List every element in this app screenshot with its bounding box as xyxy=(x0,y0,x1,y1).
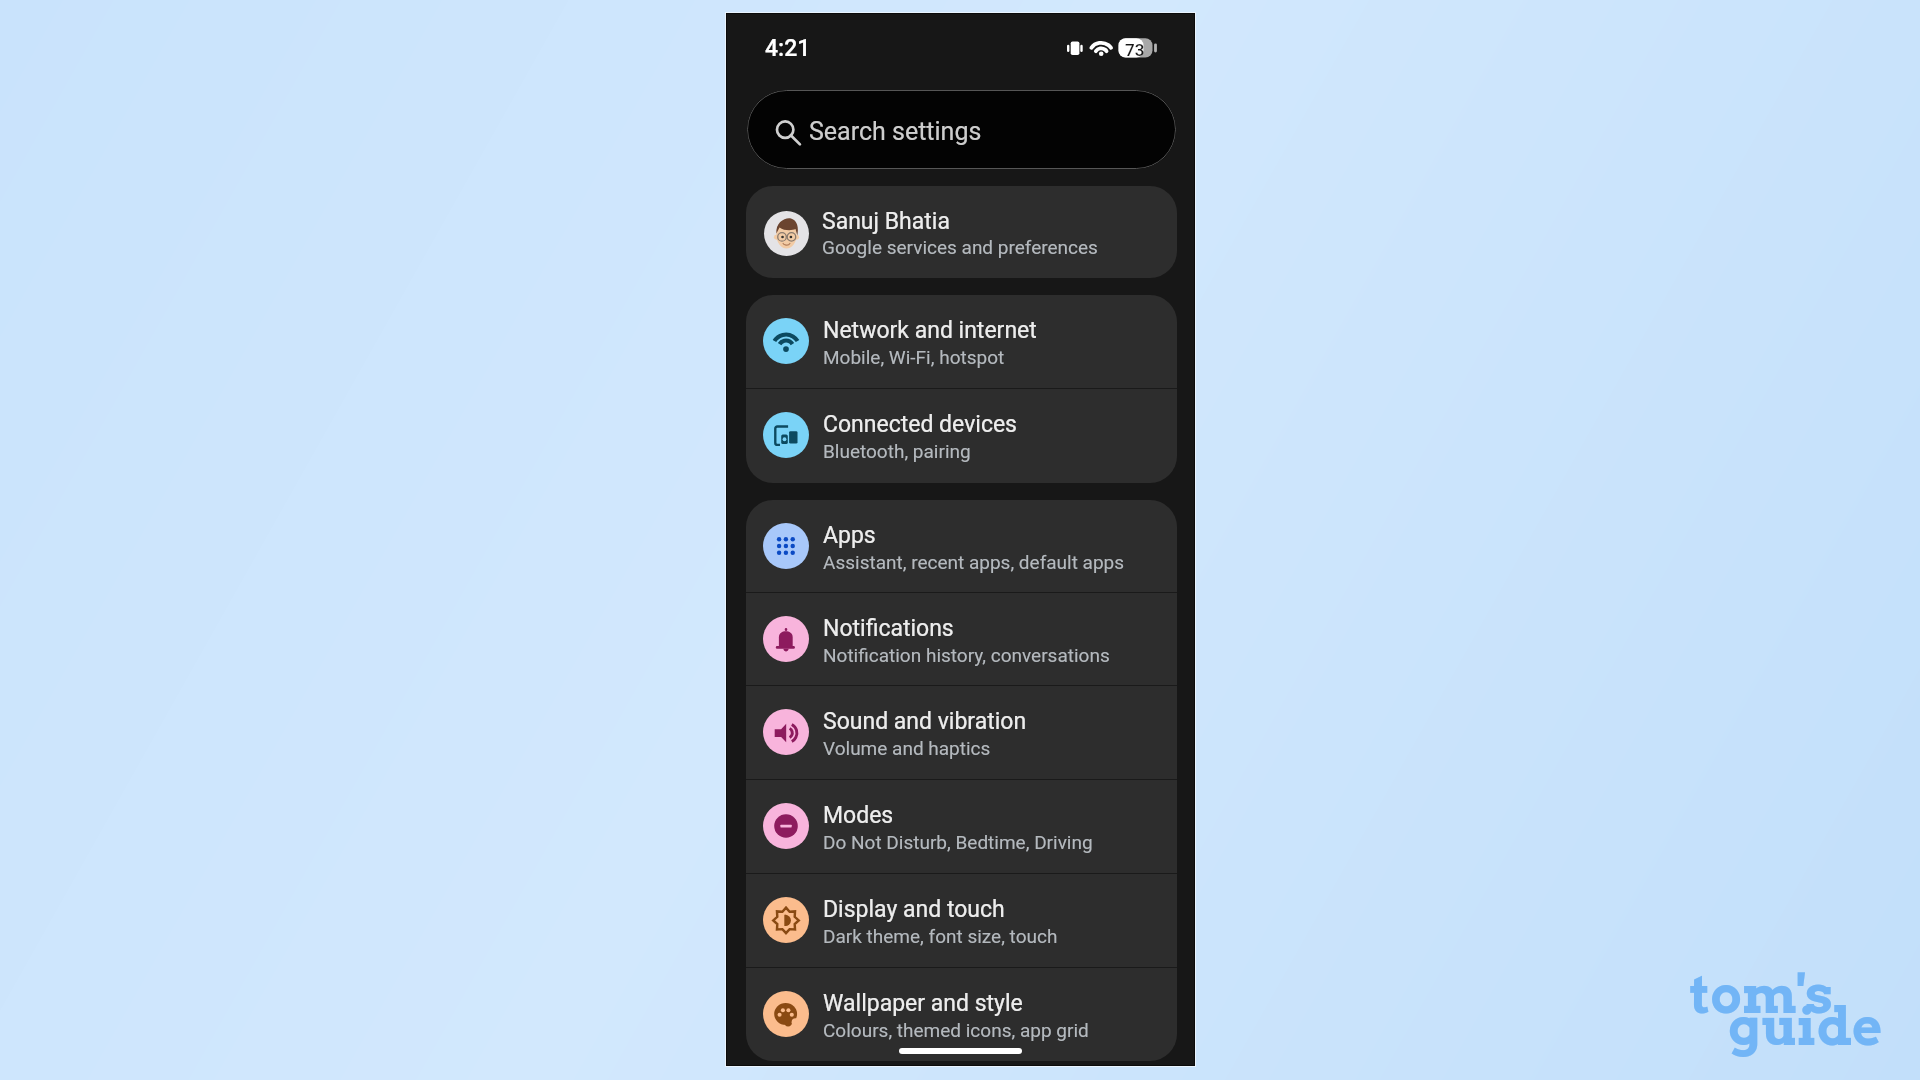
staticText: Notification history, conversations xyxy=(823,644,1110,666)
staticText: Search settings xyxy=(809,117,982,146)
button[interactable]: Modes xyxy=(746,780,1177,873)
staticText: Google services and preferences xyxy=(822,236,1098,258)
button[interactable]: Connected devices xyxy=(746,389,1177,483)
staticText: Sound and vibration xyxy=(823,708,1027,735)
button[interactable]: Sound and vibration xyxy=(746,686,1177,779)
staticText: Mobile, Wi-Fi, hotspot xyxy=(823,346,1005,368)
staticText: Network and internet xyxy=(823,317,1037,344)
button[interactable]: Search settings xyxy=(747,90,1176,169)
staticText: Do Not Disturb, Bedtime, Driving xyxy=(823,831,1093,853)
staticText: Modes xyxy=(823,802,894,829)
staticText: Notifications xyxy=(823,615,954,642)
staticText: tom's xyxy=(1690,963,1834,1026)
button[interactable]: Wallpaper and style xyxy=(746,968,1177,1061)
staticText: Volume and haptics xyxy=(823,737,991,759)
staticText: guide xyxy=(1728,995,1883,1058)
staticText: 73 xyxy=(1125,40,1145,60)
button[interactable]: Notifications xyxy=(746,593,1177,685)
staticText: Wallpaper and style xyxy=(823,990,1023,1017)
staticText: Sanuj Bhatia xyxy=(822,208,950,235)
staticText: Apps xyxy=(823,522,876,549)
button[interactable]: Network and internet xyxy=(746,295,1177,388)
button[interactable]: Apps xyxy=(746,500,1177,592)
staticText: 4:21 xyxy=(765,35,811,62)
staticText: Display and touch xyxy=(823,896,1005,923)
staticText: Connected devices xyxy=(823,411,1017,438)
staticText: Bluetooth, pairing xyxy=(823,440,971,462)
staticText: Dark theme, font size, touch xyxy=(823,925,1058,947)
button[interactable]: Sanuj Bhatia xyxy=(746,186,1177,278)
button[interactable]: Display and touch xyxy=(746,874,1177,967)
staticText: Assistant, recent apps, default apps xyxy=(823,551,1125,573)
other: Status icons xyxy=(1057,24,1163,74)
staticText: Colours, themed icons, app grid xyxy=(823,1019,1089,1041)
